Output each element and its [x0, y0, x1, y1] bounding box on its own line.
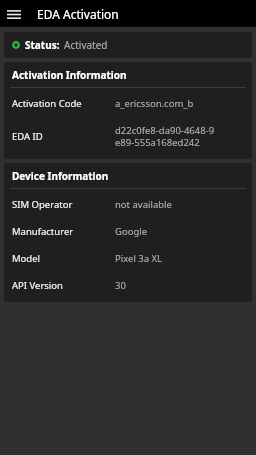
- button[interactable]: EDA ID: [4, 117, 252, 156]
- staticText: not available: [115, 198, 244, 211]
- staticText: Activation Information: [12, 68, 127, 82]
- button[interactable]: SIM Operator: [4, 191, 252, 218]
- staticText: Activated: [64, 38, 108, 52]
- button[interactable]: Open navigation menu: [0, 0, 27, 27]
- staticText: Activation Code: [12, 97, 115, 110]
- button[interactable]: Model: [4, 245, 252, 272]
- staticText: Device Information: [12, 169, 109, 183]
- staticText: API Version: [12, 279, 115, 292]
- button[interactable]: Status:: [4, 32, 252, 58]
- staticText: Pixel 3a XL: [115, 252, 244, 265]
- staticText: Manufacturer: [12, 225, 115, 238]
- button[interactable]: API Version: [4, 272, 252, 299]
- staticText: d22c0fe8-da90-4648-9 e89-555a168ed242: [115, 124, 244, 149]
- button[interactable]: Manufacturer: [4, 218, 252, 245]
- button[interactable]: Activation Code: [4, 90, 252, 117]
- staticText: EDA Activation: [37, 6, 119, 22]
- staticText: Status:: [25, 38, 60, 52]
- staticText: a_ericsson.com_b: [115, 97, 244, 110]
- staticText: SIM Operator: [12, 198, 115, 211]
- staticText: Model: [12, 252, 115, 265]
- staticText: EDA ID: [12, 130, 115, 143]
- staticText: 30: [115, 279, 244, 292]
- staticText: Google: [115, 225, 244, 238]
